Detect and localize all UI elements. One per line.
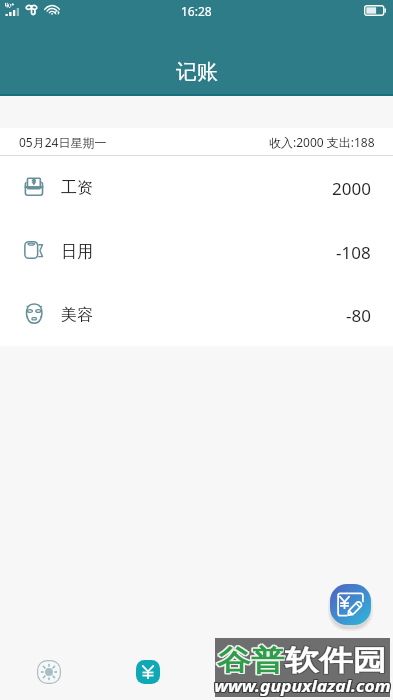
- staticText: 谷普: [218, 643, 286, 678]
- staticText: 记账: [176, 59, 218, 85]
- staticText: 工资: [61, 178, 93, 198]
- staticText: 软件园: [286, 642, 388, 677]
- staticText: 美容: [61, 305, 93, 325]
- staticText: 谷普: [216, 642, 284, 677]
- button[interactable]: 美容: [0, 284, 393, 346]
- staticText: 软件园: [283, 642, 385, 677]
- staticText: 软件园: [285, 642, 386, 677]
- staticText: 谷普: [218, 644, 286, 679]
- staticText: 谷普: [217, 643, 285, 678]
- staticText: 2000: [332, 177, 371, 200]
- staticText: www.gupuxlazal.com: [213, 676, 390, 697]
- staticText: www.gupuxlazal.com: [214, 675, 391, 696]
- staticText: 软件园: [285, 644, 386, 679]
- staticText: 谷普: [218, 642, 286, 677]
- staticText: 05月24日星期一: [19, 134, 107, 150]
- button[interactable]: Theme: [37, 660, 61, 684]
- staticText: 16:28: [181, 3, 212, 19]
- staticText: www.gupuxlazal.com: [215, 676, 392, 697]
- staticText: 谷普: [216, 643, 284, 678]
- staticText: 软件园: [286, 643, 388, 678]
- staticText: 收入:2000 支出:188: [269, 134, 375, 150]
- staticText: 谷普: [216, 644, 284, 679]
- staticText: www.gupuxlazal.com: [214, 674, 391, 695]
- button[interactable]: Add record: [330, 584, 371, 625]
- staticText: www.gupuxlazal.com: [215, 674, 392, 695]
- button[interactable]: 日用: [0, 220, 393, 284]
- staticText: www.gupuxlazal.com: [213, 675, 390, 696]
- staticText: 日用: [61, 242, 93, 262]
- staticText: 软件园: [285, 643, 386, 678]
- staticText: 软件园: [286, 644, 388, 679]
- button[interactable]: 工资: [0, 156, 393, 220]
- staticText: -80: [346, 304, 371, 327]
- staticText: 软件园: [283, 644, 385, 679]
- staticText: 软件园: [283, 643, 385, 678]
- staticText: -108: [336, 241, 371, 264]
- staticText: www.gupuxlazal.com: [213, 674, 390, 695]
- staticText: 谷普: [217, 642, 285, 677]
- staticText: www.gupuxlazal.com: [215, 675, 392, 696]
- staticText: www.gupuxlazal.com: [214, 676, 391, 697]
- staticText: 谷普: [217, 644, 285, 679]
- button[interactable]: Records: [136, 660, 160, 684]
